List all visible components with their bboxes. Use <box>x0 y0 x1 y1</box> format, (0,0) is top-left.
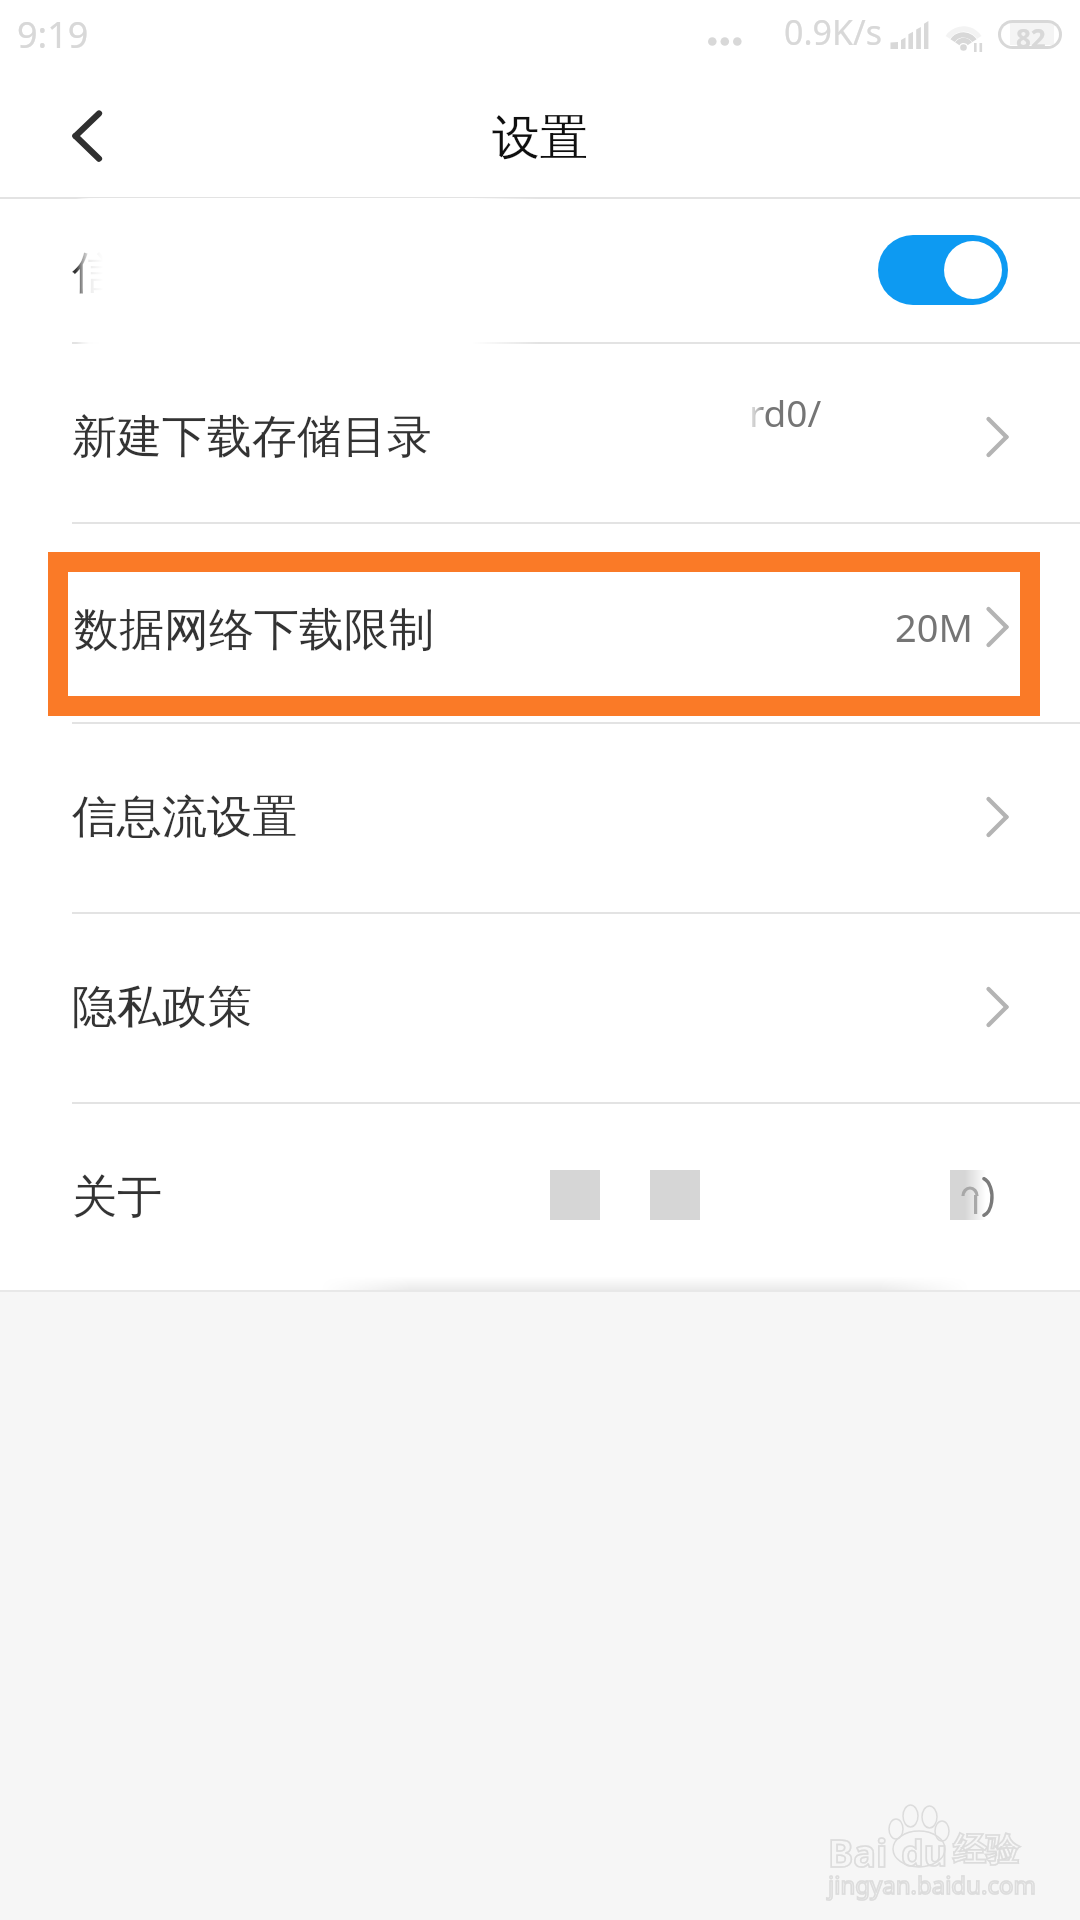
button[interactable]: 隐私政策 <box>0 912 1080 1102</box>
button[interactable]: 信息流设置 <box>0 722 1080 912</box>
staticText: jingyan.baidu.com <box>828 1868 1036 1901</box>
button[interactable]: Back <box>30 80 140 190</box>
staticText: 0.9K/s <box>784 9 882 55</box>
button[interactable]: 数据网络下载限制 <box>68 572 1020 696</box>
staticText: 20M <box>895 601 973 653</box>
staticText: 新建下载存储目录 <box>72 409 432 466</box>
staticText: 数据网络下载限制 <box>74 602 434 659</box>
staticText: du <box>901 1828 948 1877</box>
staticText: 信息提示 <box>72 245 252 302</box>
staticText: 9:19 <box>17 10 89 59</box>
staticText: rd0/ <box>749 387 822 437</box>
staticText: 经验 <box>953 1829 1019 1871</box>
button[interactable]: 信息提示 <box>0 198 1080 342</box>
staticText: 设置 <box>492 108 588 168</box>
button[interactable]: 关于 <box>0 1102 1080 1292</box>
staticText: 关于 <box>72 1169 162 1226</box>
staticText: Bai <box>828 1826 888 1878</box>
staticText: 信息流设置 <box>72 789 297 846</box>
staticText: 隐私政策 <box>72 979 252 1036</box>
staticText: 82 <box>1016 20 1046 55</box>
button[interactable]: Toggle <box>878 235 1008 305</box>
button[interactable]: 新建下载存储目录 <box>0 342 1080 522</box>
